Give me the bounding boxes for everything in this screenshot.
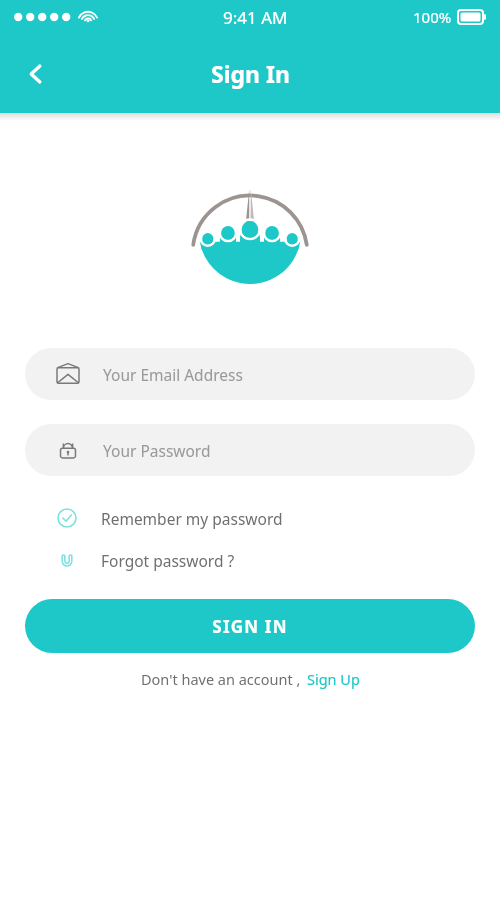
staticText: Your Email Address — [103, 364, 243, 385]
staticText: Sign Up — [307, 669, 360, 689]
button[interactable]: Forgot password ? — [25, 543, 475, 577]
staticText: 100% — [413, 7, 452, 27]
staticText: Forgot password ? — [101, 550, 235, 571]
staticText: SIGN IN — [212, 615, 288, 638]
button[interactable]: Sign Up — [307, 669, 360, 689]
button[interactable]: Your Email Address — [25, 348, 475, 400]
button[interactable]: Back — [10, 48, 62, 100]
staticText: Your Password — [103, 440, 211, 461]
button[interactable]: Remember my password — [25, 501, 475, 535]
staticText: Don't have an account , — [141, 669, 301, 689]
staticText: Sign In — [211, 58, 290, 89]
staticText: Remember my password — [101, 508, 283, 529]
button[interactable]: SIGN IN — [25, 599, 475, 653]
staticText: 9:41 AM — [223, 6, 288, 29]
button[interactable]: Your Password — [25, 424, 475, 476]
